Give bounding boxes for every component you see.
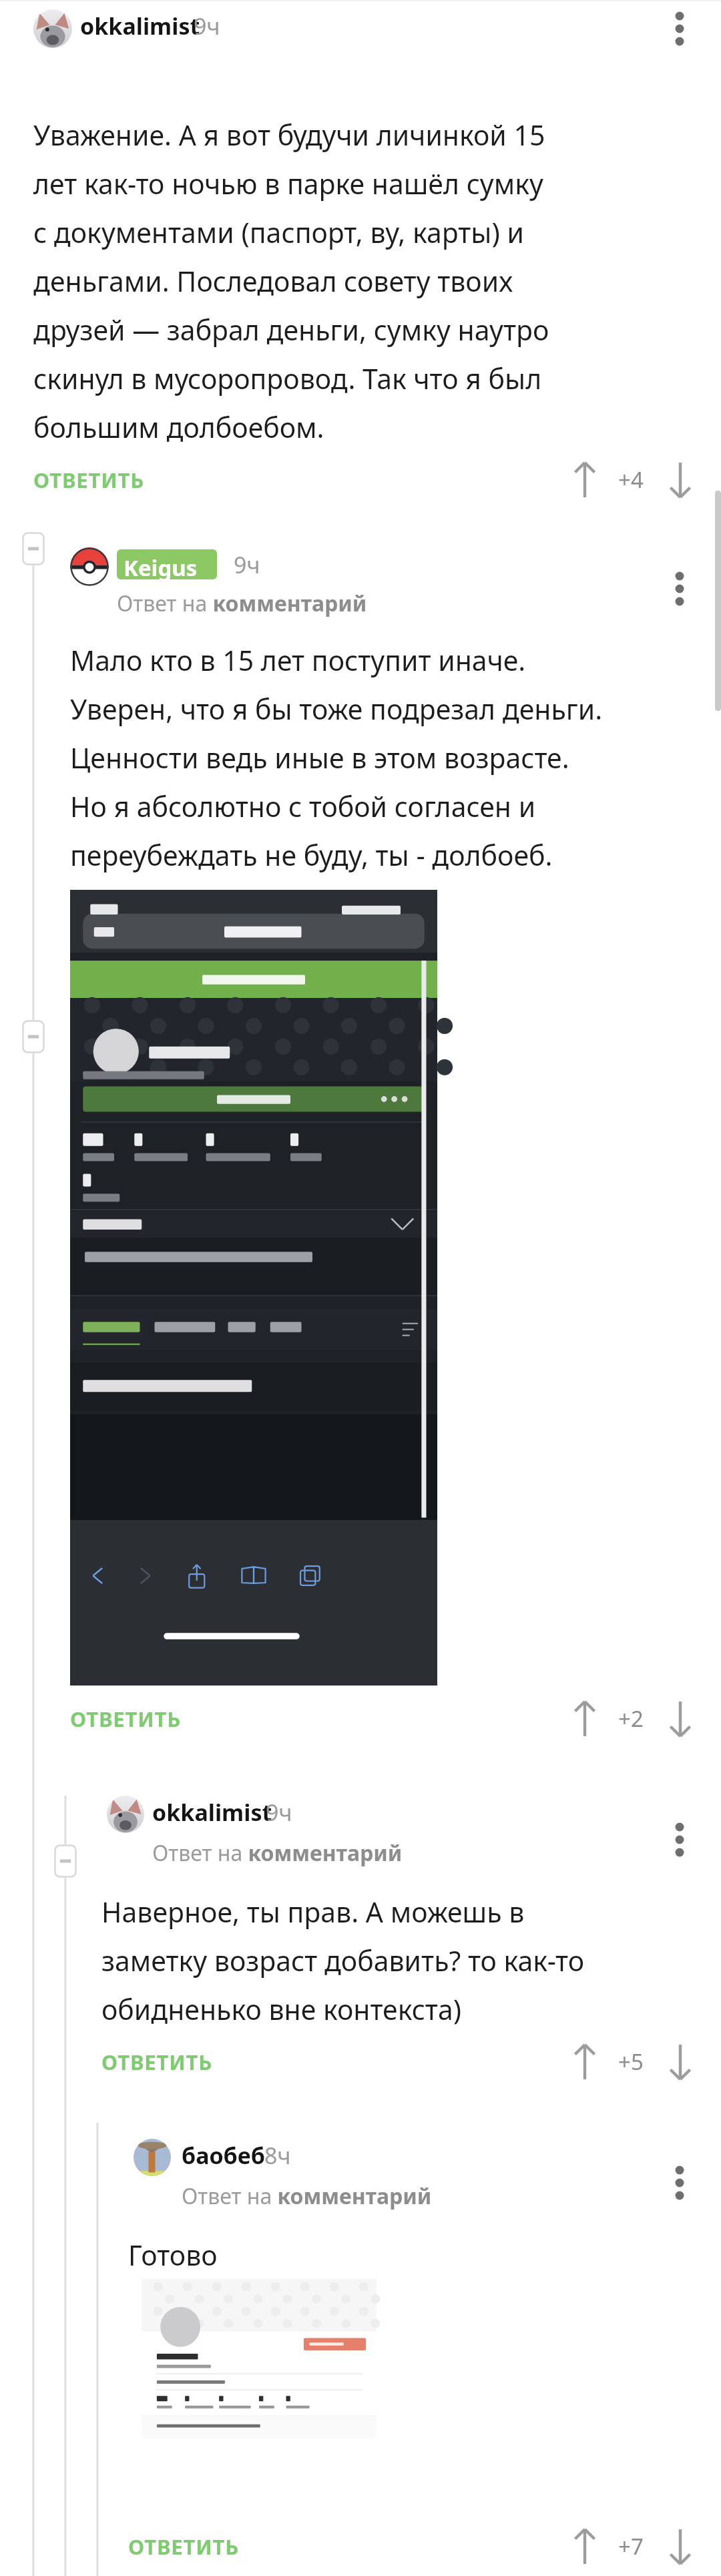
staticText: обидненько вне контекста) [101, 1991, 721, 2028]
staticText: заметку возраст добавить? то как-то [101, 1942, 721, 1979]
staticText: баобеб [182, 2140, 721, 2171]
button[interactable]: Keigus [117, 549, 217, 579]
staticText: деньгами. Последовал совету твоих [33, 262, 701, 300]
staticText: Уверен, что я бы тоже подрезал деньги. [70, 690, 721, 728]
staticText: +2 [618, 1704, 678, 1734]
button[interactable]: ОТВЕТИТЬ [33, 461, 194, 499]
button[interactable]: Ответ на комментарий [117, 589, 367, 618]
button[interactable]: Upvote [561, 2041, 608, 2083]
button[interactable]: Collapse thread [22, 532, 45, 565]
button[interactable]: ОТВЕТИТЬ [70, 1700, 230, 1738]
staticText: Ответ на комментарий [182, 2181, 432, 2211]
staticText: okkalimist [152, 1797, 721, 1828]
staticText: 9ч [194, 11, 721, 41]
staticText: okkalimist [80, 11, 721, 41]
staticText: Но я абсолютно с тобой согласен и [70, 788, 721, 825]
staticText: большим долбоебом. [33, 409, 701, 446]
button[interactable] [142, 2279, 377, 2502]
staticText: друзей — забрал деньги, сумку наутро [33, 311, 701, 348]
staticText: Уважение. А я вот будучи личинкой 15 [33, 116, 701, 154]
button[interactable]: More options [657, 2, 702, 55]
staticText: ОТВЕТИТЬ [128, 2533, 239, 2561]
button[interactable] [107, 1796, 144, 1833]
staticText: 8ч [264, 2140, 721, 2171]
staticText: Мало кто в 15 лет поступит иначе. [70, 641, 721, 679]
staticText: Готово [128, 2236, 721, 2274]
staticText: ОТВЕТИТЬ [101, 2048, 212, 2076]
staticText: Ответ на комментарий [117, 589, 367, 618]
staticText: +7 [618, 2531, 678, 2561]
staticText: +5 [618, 2047, 678, 2077]
staticText: лет как-то ночью в парке нашёл сумку [33, 165, 701, 202]
button[interactable]: Downvote [657, 1698, 704, 1740]
staticText: скинул в мусоропровод. Так что я был [33, 360, 701, 397]
button[interactable] [70, 547, 109, 586]
staticText: с документами (паспорт, ву, карты) и [33, 214, 701, 251]
button[interactable]: Upvote [561, 2526, 608, 2567]
button[interactable]: ОТВЕТИТЬ [128, 2527, 288, 2566]
button[interactable] [134, 2139, 171, 2176]
button[interactable]: More options [657, 2156, 702, 2210]
button[interactable]: More options [657, 1813, 702, 1866]
staticText: Ответ на комментарий [152, 1838, 403, 1868]
button[interactable]: Ответ на комментарий [182, 2181, 432, 2211]
staticText: +4 [618, 465, 678, 495]
staticText: 9ч [234, 549, 721, 580]
button[interactable]: Collapse thread [22, 1020, 45, 1053]
staticText: Keigus [124, 553, 217, 579]
button[interactable]: Downvote [657, 2041, 704, 2083]
button[interactable]: Collapse thread [54, 1844, 77, 1878]
button[interactable]: Upvote [561, 459, 608, 501]
staticText: Наверное, ты прав. А можешь в [101, 1893, 721, 1930]
staticText: 9ч [266, 1797, 721, 1828]
staticText: ОТВЕТИТЬ [70, 1705, 181, 1733]
button[interactable]: More options [657, 562, 702, 615]
staticText: Ценности ведь иные в этом возрасте. [70, 739, 721, 776]
button[interactable] [33, 9, 72, 48]
button[interactable]: Downvote [657, 2526, 704, 2567]
button[interactable]: ОТВЕТИТЬ [101, 2043, 262, 2081]
button[interactable] [70, 890, 437, 1686]
button[interactable]: Ответ на комментарий [152, 1838, 403, 1868]
button[interactable]: Downvote [657, 459, 704, 501]
button[interactable]: Upvote [561, 1698, 608, 1740]
staticText: ОТВЕТИТЬ [33, 466, 144, 494]
staticText: переубеждать не буду, ты - долбоеб. [70, 836, 721, 874]
